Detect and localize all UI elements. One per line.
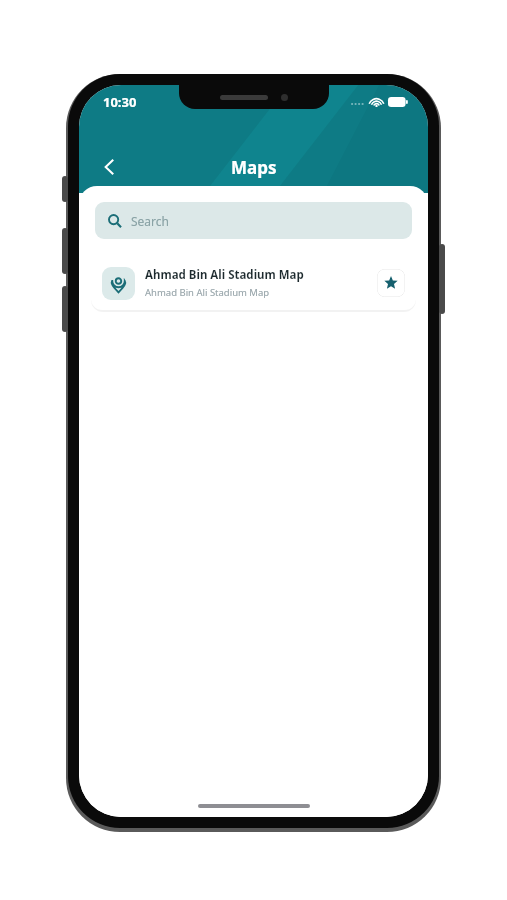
button[interactable]: Back: [89, 146, 131, 188]
staticText: Search: [131, 213, 169, 229]
staticText: Ahmad Bin Ali Stadium Map: [145, 286, 270, 299]
staticText: Maps: [231, 156, 277, 179]
staticText: 10:30: [103, 93, 137, 111]
button[interactable]: Ahmad Bin Ali Stadium Map: [91, 256, 416, 310]
button[interactable]: Favourite: [377, 269, 405, 297]
button[interactable]: Search: [95, 202, 412, 239]
staticText: Ahmad Bin Ali Stadium Map: [145, 267, 304, 283]
